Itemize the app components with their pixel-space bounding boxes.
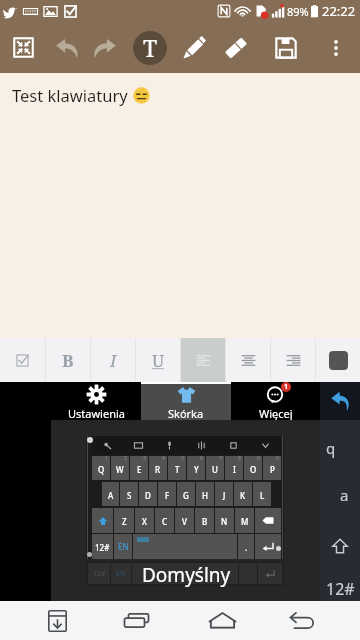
- staticText: X: [142, 516, 147, 527]
- button[interactable]: Text tool: [133, 31, 167, 65]
- button[interactable]: Collapse: [2, 22, 44, 73]
- button[interactable]: Checklist: [0, 338, 45, 382]
- staticText: V: [182, 516, 187, 527]
- staticText: q: [326, 438, 336, 458]
- staticText: 7: [219, 455, 222, 462]
- button[interactable]: B: [46, 338, 90, 382]
- button[interactable]: Eraser: [215, 22, 257, 73]
- staticText: S: [127, 490, 132, 501]
- staticText: B: [62, 349, 74, 372]
- button[interactable]: Skórka: [141, 382, 231, 420]
- staticText: 1: [105, 455, 108, 462]
- staticText: K: [240, 490, 246, 501]
- staticText: U: [212, 464, 218, 475]
- staticText: O: [250, 464, 257, 475]
- button[interactable]: Align right: [271, 338, 315, 382]
- staticText: 12#: [95, 542, 110, 553]
- staticText: A: [108, 490, 114, 501]
- staticText: 2: [124, 455, 127, 462]
- staticText: 12#: [93, 569, 106, 579]
- button[interactable]: Save: [265, 22, 307, 73]
- button[interactable]: Recent apps: [111, 601, 161, 640]
- staticText: 5: [181, 455, 184, 462]
- staticText: Więcej: [259, 406, 293, 421]
- staticText: F: [165, 490, 170, 501]
- staticText: I: [110, 349, 117, 372]
- staticText: 22:22: [322, 2, 356, 20]
- staticText: U: [152, 349, 165, 372]
- staticText: T: [143, 32, 158, 63]
- staticText: W: [116, 464, 124, 475]
- staticText: P: [270, 464, 275, 475]
- staticText: B: [202, 516, 208, 527]
- staticText: Test klawiatury: [12, 84, 128, 106]
- staticText: a: [340, 485, 349, 505]
- staticText: 8: [238, 455, 241, 462]
- staticText: C: [162, 516, 168, 527]
- button[interactable]: Text colour: [316, 338, 360, 382]
- staticText: 9: [257, 455, 260, 462]
- button[interactable]: More options: [315, 22, 357, 73]
- staticText: T: [175, 464, 180, 475]
- staticText: H: [202, 490, 208, 501]
- button[interactable]: Redo: [84, 22, 126, 73]
- staticText: 3: [143, 455, 146, 462]
- staticText: EN: [118, 541, 129, 552]
- staticText: Y: [194, 464, 199, 475]
- button[interactable]: Align center: [226, 338, 270, 382]
- button[interactable]: Home: [197, 601, 247, 640]
- button[interactable]: I: [91, 338, 135, 382]
- staticText: 12#: [326, 578, 355, 600]
- button[interactable]: Back: [277, 601, 327, 640]
- staticText: Domyślny: [142, 562, 231, 588]
- staticText: Z: [122, 516, 127, 527]
- staticText: 6: [200, 455, 203, 462]
- button[interactable]: U: [136, 338, 180, 382]
- button[interactable]: Ustawienia: [51, 382, 141, 420]
- button[interactable]: Hide keyboard: [32, 601, 82, 640]
- staticText: 0: [276, 455, 279, 462]
- staticText: I: [233, 464, 236, 475]
- staticText: 1: [284, 382, 289, 392]
- button[interactable]: Align left: [181, 338, 225, 382]
- staticText: 4: [162, 455, 165, 462]
- staticText: R: [155, 464, 161, 475]
- button[interactable]: 1: [231, 382, 320, 420]
- staticText: N: [221, 516, 228, 527]
- staticText: J: [223, 490, 226, 501]
- staticText: M: [241, 516, 249, 527]
- staticText: Skórka: [168, 406, 204, 421]
- button[interactable]: Undo: [46, 22, 88, 73]
- button[interactable]: Pen: [173, 22, 215, 73]
- button[interactable]: Back: [320, 382, 360, 420]
- staticText: .: [245, 542, 248, 553]
- staticText: G: [183, 490, 189, 501]
- staticText: D: [145, 490, 151, 501]
- staticText: L: [260, 490, 265, 501]
- staticText: Ustawienia: [68, 406, 125, 421]
- staticText: Q: [98, 464, 105, 475]
- staticText: 89%: [287, 4, 309, 19]
- staticText: E: [137, 464, 142, 475]
- staticText: EN: [116, 569, 126, 579]
